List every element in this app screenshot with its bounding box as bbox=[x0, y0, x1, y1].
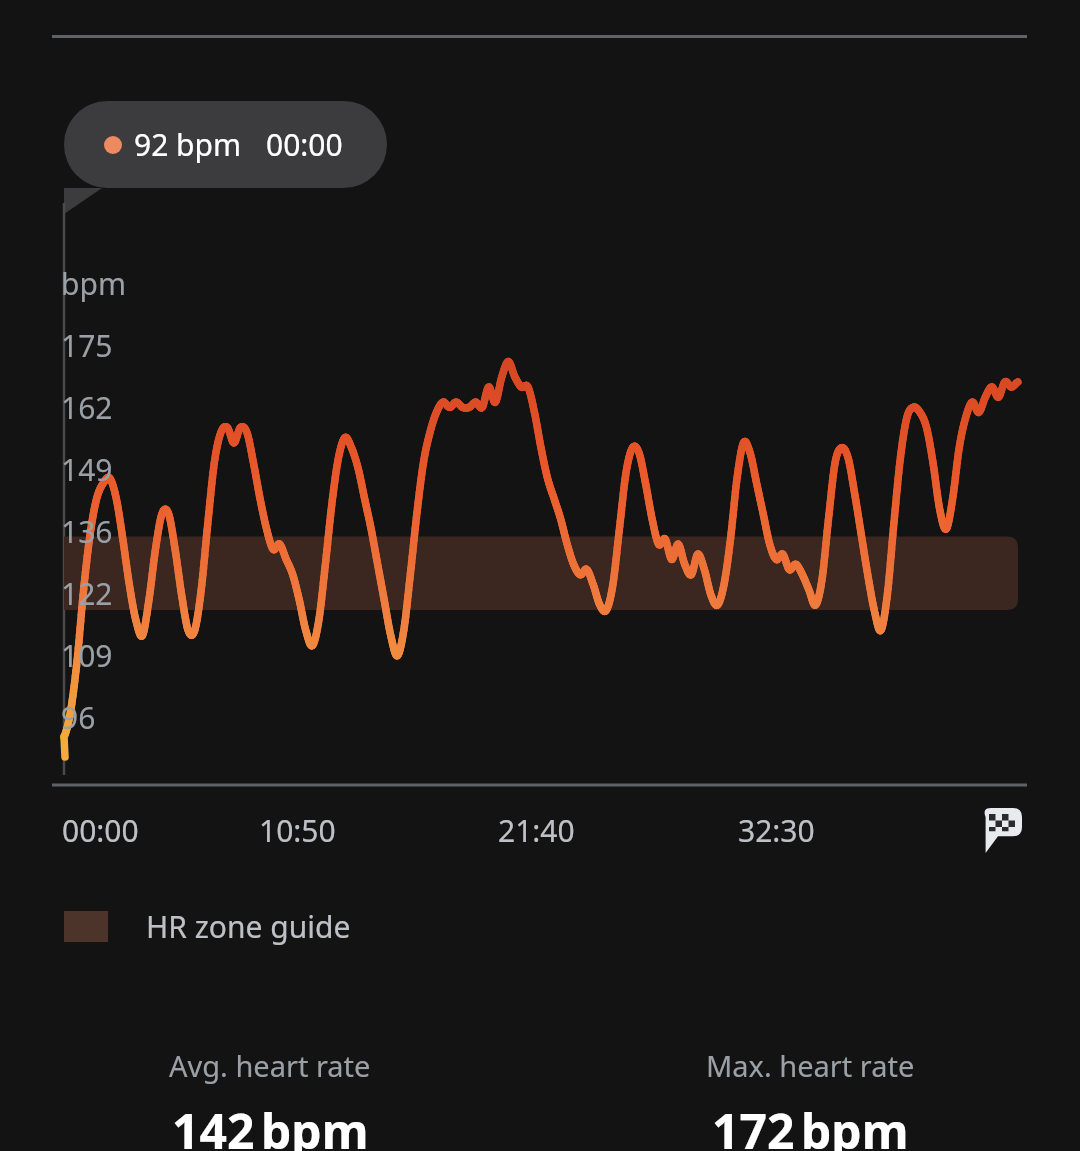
staticText: 149 bbox=[61, 449, 113, 490]
staticText: Avg. heart rate bbox=[169, 1046, 371, 1085]
staticText: 32:30 bbox=[738, 810, 815, 851]
staticText: bpm bbox=[61, 263, 126, 304]
staticText: 00:00 bbox=[62, 810, 139, 851]
staticText: 136 bbox=[61, 511, 113, 552]
button[interactable]: 92 bpm bbox=[64, 101, 387, 188]
staticText: HR zone guide bbox=[146, 906, 351, 947]
staticText: 00:00 bbox=[266, 124, 343, 165]
button[interactable]: Avg. heart rate bbox=[0, 1046, 540, 1151]
staticText: 142 bbox=[172, 1098, 255, 1151]
staticText: 109 bbox=[61, 635, 113, 676]
staticText: 10:50 bbox=[259, 810, 336, 851]
staticText: bpm bbox=[801, 1098, 909, 1151]
button[interactable]: Max. heart rate bbox=[540, 1046, 1080, 1151]
staticText: 21:40 bbox=[498, 810, 575, 851]
button[interactable]: Finish bbox=[972, 798, 1034, 860]
staticText: 92 bpm bbox=[134, 124, 242, 165]
staticText: 122 bbox=[61, 573, 113, 614]
staticText: bpm bbox=[261, 1098, 369, 1151]
staticText: 175 bbox=[61, 325, 113, 366]
staticText: 96 bbox=[61, 697, 96, 738]
button[interactable]: HR zone guide bbox=[64, 906, 351, 947]
staticText: 162 bbox=[61, 387, 113, 428]
staticText: 172 bbox=[712, 1098, 795, 1151]
staticText: Max. heart rate bbox=[706, 1046, 915, 1085]
